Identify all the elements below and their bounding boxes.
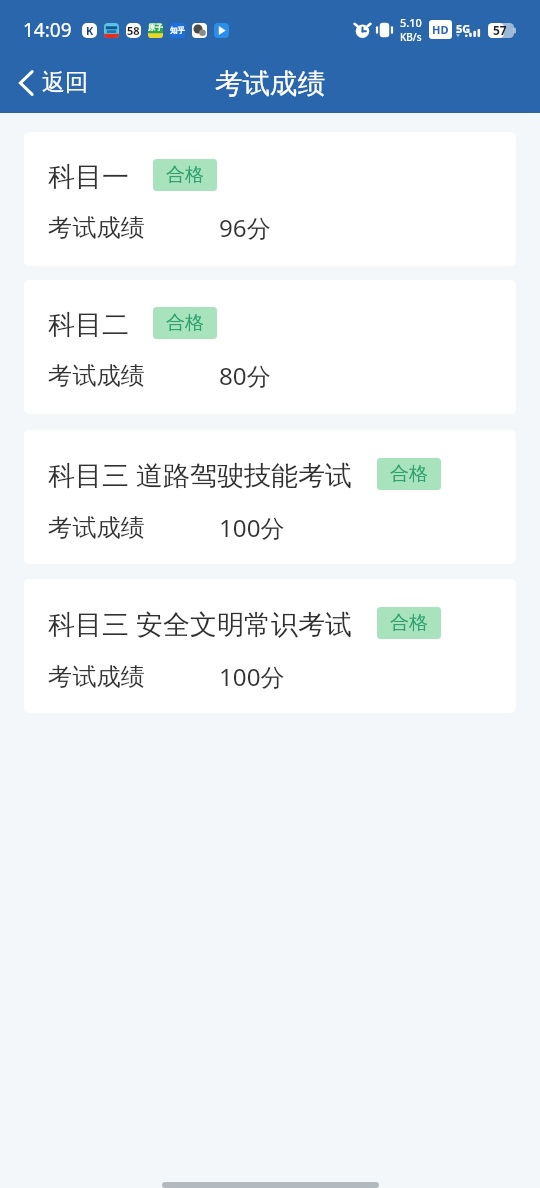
staticText: 96分 xyxy=(219,211,271,244)
staticText: 合格 xyxy=(166,163,204,187)
staticText: 科目三 道路驾驶技能考试 xyxy=(48,454,353,496)
staticText: K xyxy=(86,23,94,38)
button[interactable]: 科目二 xyxy=(24,280,516,414)
staticText: 考试成绩 xyxy=(48,513,219,543)
staticText: 100分 xyxy=(219,511,285,544)
button[interactable]: 返回 xyxy=(9,60,98,105)
staticText: 考试成绩 xyxy=(48,662,219,692)
staticText: 80分 xyxy=(219,359,271,392)
staticText: 科目三 安全文明常识考试 xyxy=(48,603,353,645)
staticText: 14:09 xyxy=(23,17,72,43)
staticText: 57 xyxy=(493,22,507,38)
staticText: 100分 xyxy=(219,660,285,693)
staticText: 合格 xyxy=(390,611,428,635)
staticText: 科目一 xyxy=(48,156,129,196)
staticText: 原子 xyxy=(148,23,163,32)
staticText: 科目二 xyxy=(48,304,129,344)
staticText: 考试成绩 xyxy=(48,361,219,391)
button[interactable]: 科目三 安全文明常识考试 xyxy=(24,579,516,713)
staticText: 考试成绩 xyxy=(48,213,219,243)
button[interactable]: 科目一 xyxy=(24,132,516,266)
button[interactable]: 科目三 道路驾驶技能考试 xyxy=(24,430,516,564)
staticText: 考试成绩 xyxy=(215,67,325,102)
staticText: 知乎 xyxy=(170,26,185,35)
staticText: 58 xyxy=(127,23,140,38)
staticText: 返回 xyxy=(42,68,88,97)
staticText: KB/s xyxy=(400,30,422,44)
staticText: HD xyxy=(432,22,449,37)
staticText: 5G xyxy=(456,21,471,36)
staticText: 5.10 xyxy=(400,15,422,30)
staticText: 合格 xyxy=(390,462,428,486)
staticText: 合格 xyxy=(166,311,204,335)
